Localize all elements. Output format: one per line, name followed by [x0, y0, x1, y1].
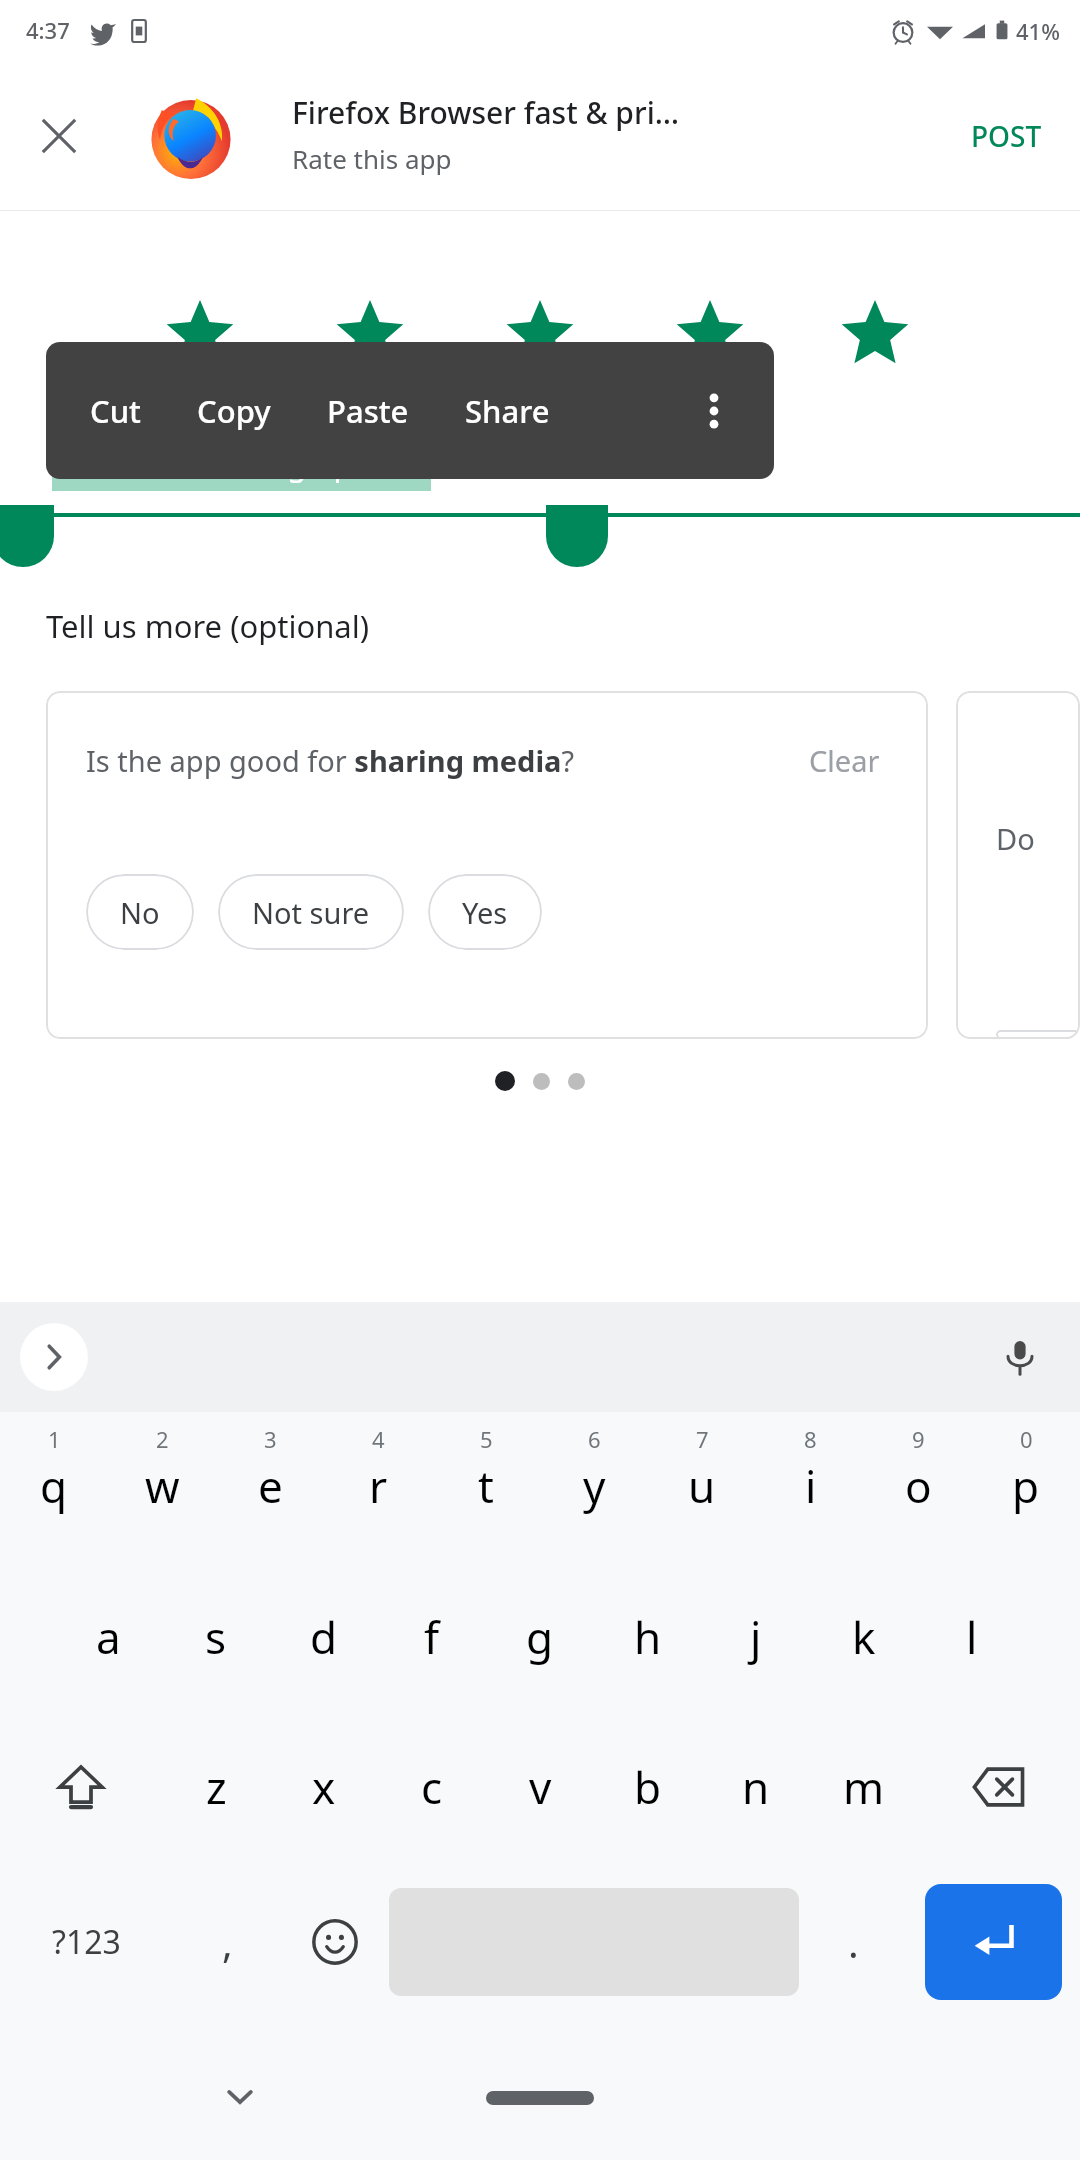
- staticText: 4: [372, 1424, 385, 1454]
- button[interactable]: 2: [108, 1412, 216, 1562]
- staticText: Rate this app: [292, 141, 452, 176]
- button[interactable]: Clear: [801, 735, 888, 786]
- staticText: f: [424, 1607, 440, 1667]
- staticText: d: [310, 1607, 338, 1667]
- staticText: 9: [912, 1424, 925, 1454]
- staticText: s: [205, 1607, 227, 1667]
- button[interactable]: 0: [972, 1412, 1080, 1562]
- button[interactable]: No: [996, 1030, 1080, 1039]
- button[interactable]: Share: [459, 374, 556, 448]
- button[interactable]: k: [810, 1562, 918, 1712]
- button[interactable]: j: [702, 1562, 810, 1712]
- staticText: Yes: [462, 893, 508, 932]
- button[interactable]: x: [270, 1712, 378, 1862]
- button[interactable]: m: [810, 1712, 918, 1862]
- button[interactable]: Rate 4 star: [666, 291, 754, 379]
- button[interactable]: Rate 5 star: [831, 291, 919, 379]
- button[interactable]: Expand toolbar: [20, 1323, 88, 1391]
- staticText: Cut: [90, 390, 141, 432]
- button[interactable]: h: [594, 1562, 702, 1712]
- button[interactable]: 4: [324, 1412, 432, 1562]
- button[interactable]: Is the app good for sharing media?: [46, 691, 928, 1039]
- staticText: Does the app work well?: [996, 819, 1040, 858]
- staticText: x: [312, 1757, 336, 1817]
- button[interactable]: Rate 2 star: [326, 291, 414, 379]
- button[interactable]: n: [702, 1712, 810, 1862]
- button[interactable]: 7: [648, 1412, 756, 1562]
- staticText: .: [848, 1915, 859, 1969]
- button[interactable]: No: [86, 874, 194, 950]
- button[interactable]: Not sure: [218, 874, 404, 950]
- staticText: u: [688, 1456, 716, 1516]
- button[interactable]: Rate 3 star: [496, 291, 584, 379]
- button[interactable]: c: [378, 1712, 486, 1862]
- staticText: Copy: [197, 390, 271, 432]
- button[interactable]: b: [594, 1712, 702, 1862]
- button[interactable]: Paste: [321, 374, 415, 448]
- button[interactable]: Voice input: [984, 1321, 1056, 1393]
- staticText: r: [369, 1456, 388, 1516]
- staticText: 8: [804, 1424, 817, 1454]
- staticText: 7: [696, 1424, 709, 1454]
- button[interactable]: v: [486, 1712, 594, 1862]
- button[interactable]: Enter: [925, 1884, 1062, 2000]
- staticText: e: [258, 1456, 283, 1516]
- staticText: Not sure: [252, 893, 370, 932]
- button[interactable]: Backspace: [918, 1712, 1080, 1862]
- button[interactable]: Yes: [428, 874, 542, 950]
- button[interactable]: Hide keyboard: [200, 2056, 280, 2136]
- button[interactable]: g: [486, 1562, 594, 1712]
- staticText: 6: [588, 1424, 601, 1454]
- staticText: w: [145, 1456, 180, 1516]
- staticText: Share: [465, 390, 550, 432]
- button[interactable]: 8: [756, 1412, 864, 1562]
- button[interactable]: Does the app work well?: [956, 691, 1080, 1039]
- staticText: k: [852, 1607, 876, 1667]
- button[interactable]: ?123: [0, 1862, 173, 2022]
- button[interactable]: l: [918, 1562, 1026, 1712]
- button[interactable]: 6: [540, 1412, 648, 1562]
- button[interactable]: d: [270, 1562, 378, 1712]
- staticText: Is the app good for sharing media?: [86, 741, 575, 780]
- button[interactable]: a: [54, 1562, 162, 1712]
- button[interactable]: 9: [864, 1412, 972, 1562]
- button[interactable]: 1: [0, 1412, 108, 1562]
- button[interactable]: s: [162, 1562, 270, 1712]
- button[interactable]: Cut: [84, 374, 147, 448]
- button[interactable]: More options: [678, 375, 750, 447]
- staticText: ?123: [52, 1920, 121, 1964]
- button[interactable]: .: [799, 1862, 907, 2022]
- button[interactable]: 5: [432, 1412, 540, 1562]
- staticText: v: [529, 1757, 552, 1817]
- button[interactable]: ,: [173, 1862, 281, 2022]
- staticText: l: [966, 1607, 978, 1667]
- button[interactable]: Copy: [191, 374, 277, 448]
- staticText: 5: [480, 1424, 493, 1454]
- button[interactable]: Home: [486, 2091, 594, 2105]
- staticText: g: [526, 1607, 554, 1667]
- button[interactable]: Rate 1 star: [156, 291, 244, 379]
- staticText: 1: [48, 1424, 61, 1454]
- staticText: No: [1030, 1030, 1046, 1039]
- staticText: 2: [156, 1424, 169, 1454]
- button[interactable]: POST: [947, 99, 1066, 173]
- button[interactable]: z: [162, 1712, 270, 1862]
- button[interactable]: Emoji: [281, 1862, 389, 2022]
- staticText: m: [843, 1757, 885, 1817]
- staticText: Paste: [327, 390, 409, 432]
- staticText: h: [634, 1607, 662, 1667]
- staticText: 3: [264, 1424, 277, 1454]
- button[interactable]: f: [378, 1562, 486, 1712]
- staticText: text isn't showing up at all: [52, 443, 431, 485]
- staticText: Clear: [809, 741, 880, 780]
- staticText: a: [96, 1607, 121, 1667]
- staticText: j: [750, 1607, 762, 1667]
- staticText: 41%: [1016, 16, 1060, 46]
- staticText: o: [905, 1456, 932, 1516]
- button[interactable]: Shift: [0, 1712, 162, 1862]
- button[interactable]: 3: [216, 1412, 324, 1562]
- staticText: Tell us more (optional): [46, 605, 370, 647]
- staticText: b: [634, 1757, 662, 1817]
- button[interactable]: Close: [14, 91, 104, 181]
